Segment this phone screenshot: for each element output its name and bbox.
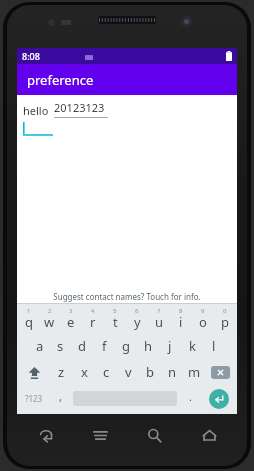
staticText: 20123123 (54, 100, 105, 115)
button[interactable]: l (203, 333, 225, 359)
staticText: d (78, 337, 86, 355)
button[interactable]: g (115, 333, 137, 359)
button[interactable]: n (161, 359, 183, 385)
staticText: Suggest contact names? Touch for info. (53, 291, 201, 302)
button[interactable]: 20123123 (54, 100, 108, 118)
staticText: hello (23, 103, 49, 118)
staticText: s (57, 337, 64, 355)
staticText: 0 (223, 307, 227, 315)
staticText: t (113, 313, 118, 331)
button[interactable]: . (179, 385, 201, 412)
button[interactable]: 2 (39, 306, 60, 333)
staticText: preference (27, 71, 94, 89)
staticText: n (168, 363, 177, 381)
staticText: w (44, 313, 55, 331)
staticText: . (189, 389, 192, 404)
button[interactable]: b (139, 359, 161, 385)
button[interactable]: Menu (83, 418, 117, 452)
staticText: 8 (179, 307, 183, 315)
button[interactable]: Search (137, 418, 171, 452)
button[interactable]: 1 (18, 306, 39, 333)
staticText: h (144, 337, 153, 355)
button[interactable]: m (183, 359, 205, 385)
button[interactable]: 6 (126, 306, 148, 333)
button[interactable]: z (50, 359, 73, 385)
button[interactable]: 0 (214, 306, 236, 333)
staticText: p (221, 313, 229, 331)
staticText: b (146, 363, 154, 381)
staticText: a (36, 337, 44, 355)
button[interactable]: 5 (104, 306, 126, 333)
staticText: g (122, 337, 130, 355)
staticText: c (103, 363, 110, 381)
button[interactable]: Suggest contact names? Touch for info. (17, 289, 237, 303)
button[interactable] (23, 122, 53, 136)
button[interactable]: f (93, 333, 115, 359)
button[interactable]: s (50, 333, 71, 359)
button[interactable]: a (29, 333, 50, 359)
staticText: f (102, 337, 107, 355)
staticText: l (212, 337, 216, 355)
staticText: 6 (135, 307, 139, 315)
staticText: u (155, 313, 164, 331)
staticText: ?123 (25, 393, 43, 404)
staticText: 7 (157, 307, 161, 315)
button[interactable]: 3 (60, 306, 82, 333)
button[interactable]: Enter (201, 385, 236, 412)
button[interactable]: 4 (82, 306, 104, 333)
button[interactable]: Back (28, 418, 62, 452)
staticText: 5 (113, 307, 117, 315)
staticText: , (59, 389, 62, 404)
button[interactable]: j (159, 333, 181, 359)
button[interactable]: , (49, 385, 71, 412)
button[interactable]: 7 (148, 306, 170, 333)
staticText: o (199, 313, 207, 331)
button[interactable]: k (181, 333, 203, 359)
staticText: 3 (69, 307, 73, 315)
staticText: i (179, 313, 183, 331)
staticText: 2 (48, 307, 52, 315)
staticText: e (67, 313, 75, 331)
button[interactable]: c (95, 359, 117, 385)
button[interactable]: ?123 (18, 385, 49, 412)
staticText: 8:08 (22, 50, 40, 62)
staticText: m (188, 363, 201, 381)
button[interactable]: Shift (18, 359, 50, 385)
button[interactable]: 9 (192, 306, 214, 333)
staticText: v (125, 363, 132, 381)
staticText: 9 (201, 307, 205, 315)
button[interactable]: x (73, 359, 95, 385)
staticText: 1 (27, 307, 31, 315)
staticText: y (134, 313, 141, 331)
staticText: k (189, 337, 196, 355)
staticText: q (25, 313, 33, 331)
staticText: j (168, 337, 172, 355)
staticText: 4 (91, 307, 95, 315)
button[interactable]: Backspace (205, 359, 236, 385)
button[interactable]: v (117, 359, 139, 385)
button[interactable]: d (71, 333, 93, 359)
staticText: r (90, 313, 96, 331)
staticText: z (58, 363, 65, 381)
button[interactable]: 8 (170, 306, 192, 333)
button[interactable]: h (137, 333, 159, 359)
button[interactable]: Home (192, 418, 226, 452)
staticText: x (81, 363, 88, 381)
